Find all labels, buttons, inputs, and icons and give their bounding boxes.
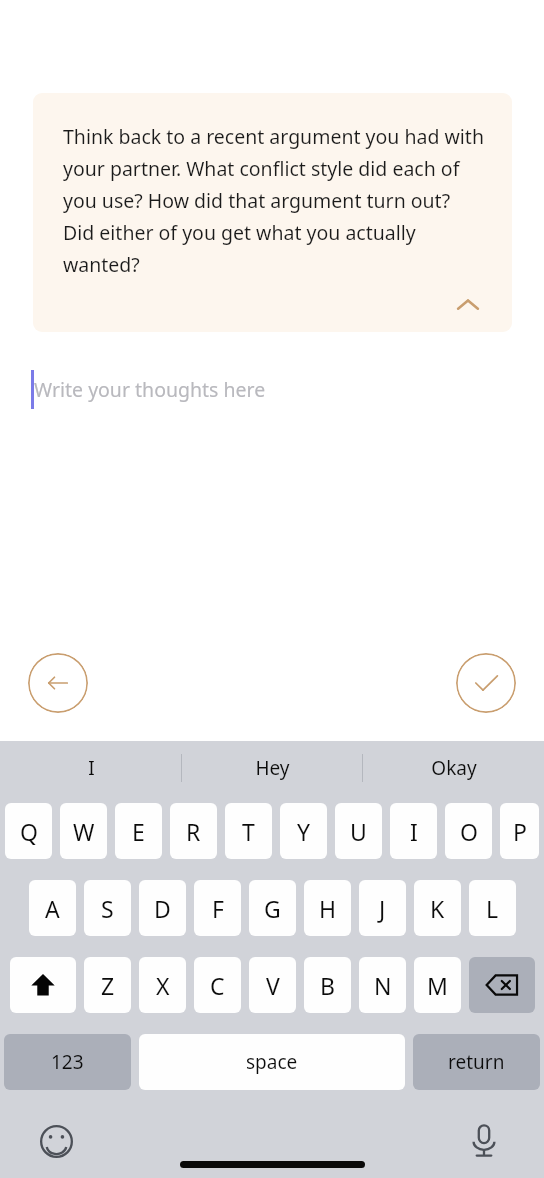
button[interactable]: X — [139, 957, 186, 1013]
staticText: 123 — [51, 1049, 84, 1075]
button[interactable]: Z — [84, 957, 131, 1013]
staticText: return — [448, 1049, 505, 1075]
button[interactable]: O — [445, 803, 492, 859]
staticText: H — [319, 893, 337, 924]
staticText: Hey — [255, 755, 290, 781]
staticText: Think back to a recent argument you had … — [63, 123, 486, 278]
staticText: X — [156, 970, 170, 1001]
staticText: F — [212, 893, 224, 924]
button[interactable]: Q — [5, 803, 52, 859]
button[interactable]: Okay — [363, 741, 544, 795]
button[interactable]: N — [359, 957, 406, 1013]
button[interactable]: K — [414, 880, 461, 936]
button[interactable]: Shift — [10, 957, 76, 1013]
staticText: space — [246, 1049, 298, 1075]
button[interactable]: W — [60, 803, 107, 859]
button[interactable]: U — [335, 803, 382, 859]
button[interactable]: R — [170, 803, 217, 859]
staticText: S — [101, 893, 114, 924]
button[interactable]: E — [115, 803, 162, 859]
staticText: D — [154, 893, 171, 924]
staticText: J — [379, 893, 386, 924]
staticText: E — [132, 816, 145, 847]
staticText: P — [513, 816, 527, 847]
staticText: R — [186, 816, 201, 847]
staticText: G — [264, 893, 281, 924]
button[interactable]: I — [0, 741, 182, 795]
staticText: O — [460, 816, 478, 847]
staticText: I — [88, 755, 95, 781]
button[interactable]: C — [194, 957, 241, 1013]
staticText: M — [427, 970, 448, 1001]
staticText: W — [73, 816, 95, 847]
button[interactable]: I — [390, 803, 437, 859]
button[interactable]: H — [304, 880, 351, 936]
button[interactable]: J — [359, 880, 406, 936]
button[interactable]: F — [194, 880, 241, 936]
button[interactable]: Y — [280, 803, 327, 859]
button[interactable]: Confirm — [456, 653, 516, 713]
staticText: U — [350, 816, 367, 847]
staticText: A — [45, 893, 60, 924]
button[interactable]: D — [139, 880, 186, 936]
button[interactable]: Voice input — [464, 1121, 504, 1161]
button[interactable]: L — [469, 880, 516, 936]
button[interactable]: Emoji — [36, 1121, 76, 1161]
staticText: B — [320, 970, 335, 1001]
staticText: K — [430, 893, 445, 924]
staticText: Write your thoughts here — [34, 376, 266, 403]
button[interactable]: return — [413, 1034, 540, 1090]
staticText: V — [266, 970, 280, 1001]
button[interactable]: Hey — [182, 741, 363, 795]
button[interactable]: S — [84, 880, 131, 936]
button[interactable]: B — [304, 957, 351, 1013]
staticText: N — [374, 970, 392, 1001]
button[interactable]: P — [500, 803, 539, 859]
staticText: Okay — [431, 755, 477, 781]
button[interactable]: Think back to a recent argument you had … — [33, 93, 512, 332]
button[interactable]: space — [139, 1034, 405, 1090]
button[interactable]: Back — [28, 653, 88, 713]
button[interactable]: T — [225, 803, 272, 859]
staticText: T — [242, 816, 255, 847]
button[interactable]: G — [249, 880, 296, 936]
staticText: Z — [101, 970, 115, 1001]
button[interactable]: M — [414, 957, 461, 1013]
staticText: I — [410, 816, 418, 847]
staticText: Y — [297, 816, 311, 847]
staticText: C — [210, 970, 225, 1001]
button[interactable]: V — [249, 957, 296, 1013]
button[interactable]: Backspace — [469, 957, 535, 1013]
staticText: Q — [20, 816, 38, 847]
staticText: L — [486, 893, 499, 924]
button[interactable]: 123 — [4, 1034, 131, 1090]
button[interactable]: A — [29, 880, 76, 936]
button[interactable]: Write your thoughts here — [31, 368, 544, 410]
button[interactable]: Collapse — [455, 292, 481, 318]
